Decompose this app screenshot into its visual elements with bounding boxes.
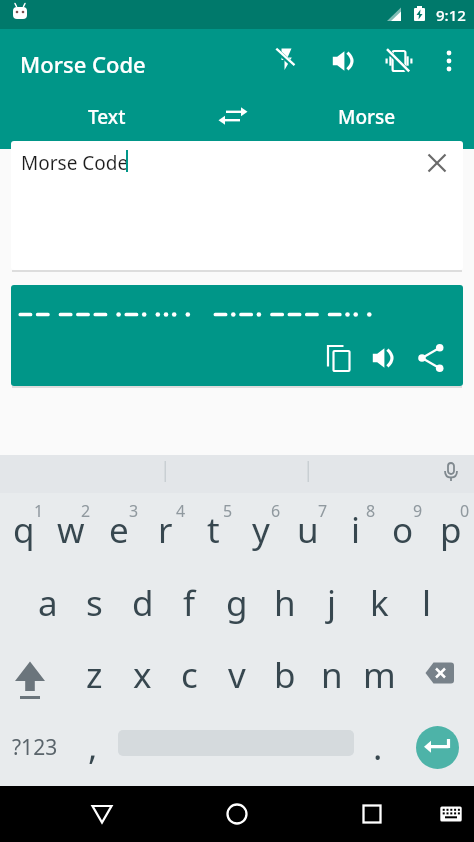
button[interactable]: , [73,717,113,777]
staticText: j [327,579,337,627]
button[interactable] [6,642,58,704]
staticText: f [183,579,196,627]
staticText: v [228,651,246,699]
staticText: i [351,506,361,554]
staticText: m [363,651,396,699]
button[interactable]: d [119,573,166,633]
button[interactable]: w [47,500,94,560]
button[interactable]: a [24,573,71,633]
staticText: b [274,651,296,699]
staticText: . [373,723,383,771]
button[interactable]: v [213,645,260,705]
staticText: 0 [460,500,470,520]
button[interactable]: p [427,500,474,560]
staticText: o [392,506,414,554]
button[interactable] [429,41,469,81]
button[interactable] [379,41,419,81]
button[interactable]: j [308,573,355,633]
staticText: k [370,579,389,627]
staticText: 1 [34,500,44,520]
staticText: Morse [338,104,396,130]
button[interactable]: b [261,645,308,705]
staticText: s [86,579,103,627]
button[interactable] [217,794,257,834]
staticText: u [297,506,319,554]
staticText: c [181,651,198,699]
staticText: Morse Code [20,49,146,79]
button[interactable]: o [379,500,426,560]
staticText: t [207,506,220,554]
staticText: p [440,506,462,554]
button[interactable]: h [261,573,308,633]
staticText: x [133,651,152,699]
button[interactable] [319,338,359,378]
button[interactable] [416,642,468,702]
button[interactable]: q [0,500,47,560]
button[interactable]: Text [60,99,154,135]
button[interactable] [213,96,253,136]
staticText: e [109,506,129,554]
staticText: l [422,579,432,627]
staticText: 9 [413,500,423,520]
staticText: q [13,506,35,554]
button[interactable]: m [356,645,403,705]
staticText: n [321,651,343,699]
button[interactable]: f [166,573,213,633]
staticText: Morse Code [21,150,129,176]
button[interactable]: y [237,500,284,560]
button[interactable]: c [166,645,213,705]
staticText: 2 [81,500,91,520]
button[interactable] [416,726,459,769]
button[interactable]: z [71,645,118,705]
staticText: g [226,579,248,627]
staticText: z [86,651,103,699]
button[interactable] [364,338,404,378]
staticText: 3 [129,500,139,520]
staticText: Text [88,104,126,130]
button[interactable] [417,143,457,183]
staticText: r [158,506,173,554]
button[interactable] [411,338,451,378]
staticText: 6 [271,500,281,520]
button[interactable]: s [71,573,118,633]
button[interactable] [82,794,122,834]
button[interactable]: x [119,645,166,705]
button[interactable] [358,717,398,777]
staticText: 4 [176,500,186,520]
button[interactable]: i [332,500,379,560]
button[interactable]: g [213,573,260,633]
button[interactable]: ?123 [8,717,62,777]
button[interactable]: u [284,500,331,560]
staticText: 7 [318,500,328,520]
staticText: 9:12 [436,5,466,25]
button[interactable]: k [356,573,403,633]
button[interactable]: r [142,500,189,560]
button[interactable] [267,41,307,81]
staticText: a [38,579,58,627]
staticText: 5 [223,500,233,520]
button[interactable] [324,41,364,81]
button[interactable]: Morse [320,99,414,135]
staticText: h [274,579,296,627]
button[interactable]: l [403,573,450,633]
button[interactable] [431,794,471,834]
button[interactable]: t [190,500,237,560]
button[interactable]: e [95,500,142,560]
button[interactable] [352,794,392,834]
staticText: 8 [366,500,376,520]
staticText: , [88,723,98,771]
staticText: y [252,506,270,554]
button[interactable]: n [308,645,355,705]
staticText: d [132,579,154,627]
staticText: ?123 [12,733,58,762]
staticText: w [57,506,85,554]
